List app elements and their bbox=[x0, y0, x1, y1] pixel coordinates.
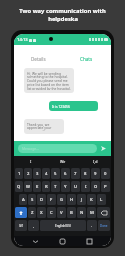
button[interactable]: !#1 bbox=[15, 220, 27, 231]
staticText: Details bbox=[31, 56, 46, 62]
button[interactable]: M bbox=[87, 207, 96, 218]
staticText: E bbox=[36, 184, 39, 190]
staticText: Done bbox=[100, 224, 108, 228]
staticText: !#1 bbox=[19, 224, 24, 228]
button[interactable]: Z bbox=[28, 207, 36, 218]
button[interactable]: Chats bbox=[62, 49, 111, 69]
button[interactable]: We bbox=[47, 156, 79, 167]
staticText: Hi, We will be sending something to the … bbox=[27, 71, 71, 90]
button[interactable]: R bbox=[42, 181, 50, 192]
staticText: D bbox=[40, 197, 44, 203]
button[interactable]: T bbox=[51, 181, 60, 192]
button[interactable]: Back bbox=[30, 236, 41, 246]
staticText: Message... bbox=[22, 146, 39, 151]
staticText: 14:13 bbox=[17, 37, 28, 43]
button[interactable]: Message... bbox=[18, 144, 97, 153]
button[interactable]: 7 bbox=[71, 168, 80, 179]
button[interactable]: C bbox=[47, 207, 56, 218]
staticText: J bbox=[81, 197, 83, 203]
staticText: R bbox=[45, 184, 48, 190]
staticText: X bbox=[40, 210, 43, 216]
button[interactable]: G bbox=[57, 194, 66, 205]
staticText: helpdeska bbox=[48, 15, 78, 23]
button[interactable]: Home bbox=[57, 236, 68, 246]
staticText: 0 bbox=[104, 171, 107, 177]
staticText: F bbox=[50, 197, 53, 203]
staticText: 3 bbox=[36, 171, 39, 177]
button[interactable]: Y bbox=[61, 181, 70, 192]
button[interactable]: E bbox=[33, 181, 41, 192]
button[interactable]: I bbox=[81, 181, 90, 192]
button[interactable]: 8 bbox=[81, 168, 90, 179]
button[interactable]: 3 bbox=[33, 168, 41, 179]
button[interactable]: D bbox=[37, 194, 46, 205]
button[interactable]: L bbox=[97, 194, 106, 205]
button[interactable]: English(US) bbox=[40, 220, 86, 231]
staticText: I bbox=[30, 159, 32, 164]
button[interactable]: I bbox=[14, 156, 47, 167]
button[interactable]: Done bbox=[98, 220, 110, 231]
button[interactable]: 5 bbox=[51, 168, 60, 179]
staticText: A bbox=[22, 197, 25, 203]
staticText: Y bbox=[64, 184, 67, 190]
staticText: N bbox=[80, 210, 84, 216]
button[interactable]: 0 bbox=[101, 168, 110, 179]
staticText: Two way communication with bbox=[19, 7, 106, 15]
button[interactable]: 4 bbox=[42, 168, 50, 179]
button[interactable]: 1 bbox=[15, 168, 23, 179]
button[interactable]: W bbox=[24, 181, 32, 192]
staticText: 8 bbox=[84, 171, 87, 177]
button[interactable]: B bbox=[67, 207, 76, 218]
button[interactable]: P bbox=[101, 181, 110, 192]
staticText: 6 bbox=[64, 171, 67, 177]
button[interactable]: F bbox=[47, 194, 56, 205]
staticText: T bbox=[54, 184, 57, 190]
button[interactable]: Send bbox=[99, 144, 108, 153]
button[interactable] bbox=[15, 207, 27, 218]
staticText: Q bbox=[17, 184, 21, 190]
staticText: L bbox=[100, 197, 103, 203]
staticText: U bbox=[74, 184, 78, 190]
button[interactable]: K bbox=[87, 194, 96, 205]
staticText: 5 bbox=[54, 171, 57, 177]
staticText: O bbox=[94, 184, 98, 190]
button[interactable]: 2 bbox=[24, 168, 32, 179]
button[interactable]: O bbox=[91, 181, 100, 192]
button[interactable]: Q bbox=[15, 181, 23, 192]
button[interactable]: A bbox=[19, 194, 27, 205]
button[interactable]: X bbox=[37, 207, 46, 218]
staticText: Z bbox=[31, 210, 34, 216]
staticText: V bbox=[60, 210, 63, 216]
staticText: It is 123456 bbox=[52, 104, 70, 108]
staticText: M bbox=[90, 210, 94, 216]
button[interactable]: . bbox=[87, 220, 97, 231]
button[interactable]: , bbox=[28, 220, 39, 231]
button[interactable]: N bbox=[77, 207, 86, 218]
staticText: Thank you, we appreciate your response 😊 bbox=[27, 122, 61, 131]
button[interactable]: H bbox=[67, 194, 76, 205]
button[interactable]: 6 bbox=[61, 168, 70, 179]
staticText: I bbox=[85, 184, 87, 190]
staticText: . bbox=[91, 223, 93, 229]
staticText: 7 bbox=[74, 171, 77, 177]
staticText: I,d bbox=[93, 159, 98, 164]
staticText: 9 bbox=[94, 171, 97, 177]
staticText: 2 bbox=[27, 171, 30, 177]
button[interactable]: I,d bbox=[79, 156, 111, 167]
button[interactable] bbox=[97, 207, 110, 218]
staticText: P bbox=[104, 184, 107, 190]
button[interactable]: J bbox=[77, 194, 86, 205]
button[interactable]: S bbox=[28, 194, 36, 205]
button[interactable]: Details bbox=[14, 49, 62, 69]
staticText: Chats bbox=[80, 56, 93, 62]
staticText: , bbox=[33, 223, 35, 229]
button[interactable]: Recents bbox=[84, 236, 95, 246]
button[interactable]: V bbox=[57, 207, 66, 218]
staticText: 4 bbox=[45, 171, 48, 177]
staticText: English(US) bbox=[55, 224, 71, 228]
button[interactable]: 9 bbox=[91, 168, 100, 179]
staticText: W bbox=[26, 184, 30, 190]
staticText: S bbox=[31, 197, 34, 203]
button[interactable]: U bbox=[71, 181, 80, 192]
staticText: G bbox=[60, 197, 64, 203]
